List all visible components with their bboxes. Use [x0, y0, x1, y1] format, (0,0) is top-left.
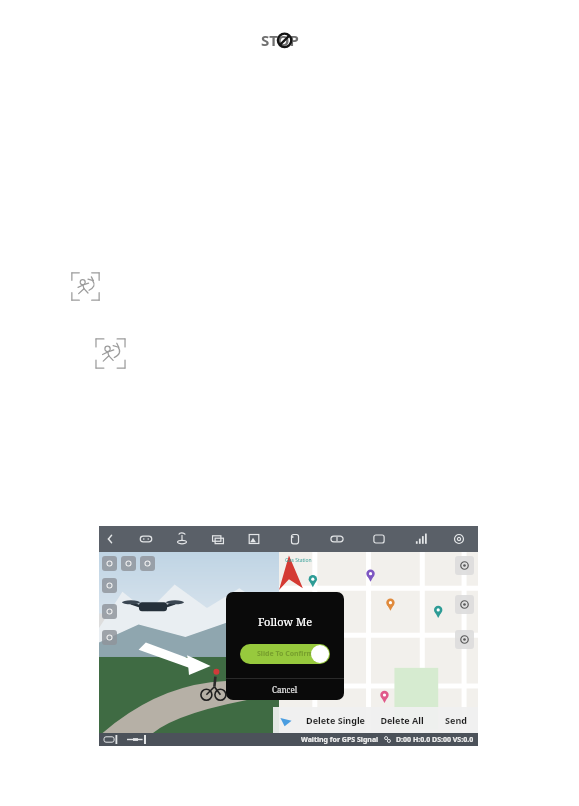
staticText: Slide To Confirm [257, 649, 314, 659]
button[interactable]: Slide To Confirm [240, 644, 330, 664]
button[interactable]: Settings [448, 529, 470, 549]
button[interactable]: Send [433, 707, 478, 733]
button[interactable]: Record [102, 556, 117, 571]
staticText: Send [445, 714, 467, 726]
staticText: STOP [261, 30, 299, 50]
button[interactable]: Transmission [207, 529, 229, 549]
button[interactable]: Signal strength [410, 529, 432, 549]
button[interactable]: Controller [135, 529, 157, 549]
button[interactable]: Zoom [455, 630, 474, 649]
button[interactable]: Gallery [243, 529, 265, 549]
staticText: Delete Single [306, 714, 365, 726]
button[interactable]: Cancel [226, 679, 344, 700]
button[interactable]: Panorama 180 [368, 529, 390, 549]
button[interactable]: Back [99, 529, 121, 549]
button[interactable]: Map layers [102, 604, 117, 619]
button[interactable]: Recenter [455, 556, 474, 575]
staticText: D:00 H:0.0 DS:00 VS:0.0 [396, 735, 474, 745]
button[interactable]: Storage [284, 529, 306, 549]
button[interactable]: Delete Single [299, 707, 371, 733]
button[interactable]: Follow me tracking mode [70, 271, 101, 302]
button[interactable]: Delete All [371, 707, 433, 733]
button[interactable]: Shutter [121, 556, 136, 571]
staticText: Gas Station [285, 557, 312, 564]
staticText: Follow Me [258, 614, 313, 629]
button[interactable]: VR goggles [326, 529, 348, 549]
button[interactable]: Follow me tracking mode [94, 337, 127, 370]
button[interactable]: Gimbal [102, 578, 117, 593]
staticText: Delete All [380, 714, 424, 726]
button[interactable]: Map type [455, 595, 474, 614]
staticText: Waiting for GPS Signal [301, 735, 379, 745]
button[interactable]: Settings panel [102, 630, 117, 645]
button[interactable]: Focus [140, 556, 155, 571]
staticText: Cancel [272, 684, 298, 695]
button[interactable]: Aircraft status [171, 529, 193, 549]
